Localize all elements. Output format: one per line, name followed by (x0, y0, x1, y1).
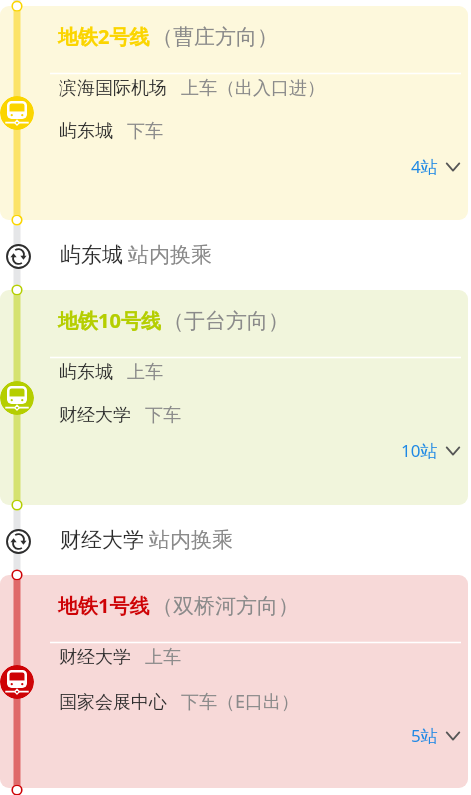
staticText: 地铁2号线 (58, 23, 150, 50)
button[interactable]: 屿东城 (0, 220, 471, 290)
staticText: （于台方向） (163, 308, 289, 334)
staticText: 下车 (145, 404, 181, 427)
staticText: 4站 (411, 155, 438, 178)
button[interactable]: 财经大学 (0, 505, 471, 575)
button[interactable]: 5站 (411, 724, 460, 747)
staticText: 屿东城 (59, 120, 113, 143)
button[interactable] (0, 290, 468, 505)
staticText: 站内换乘 (149, 527, 233, 553)
button[interactable]: 4站 (411, 155, 460, 178)
staticText: 下车（E口出） (181, 689, 300, 714)
staticText: 财经大学 (59, 646, 131, 669)
staticText: （曹庄方向） (152, 24, 278, 50)
staticText: 地铁10号线 (58, 307, 161, 334)
staticText: 上车 (145, 646, 181, 669)
staticText: 屿东城 (60, 242, 123, 268)
button[interactable] (0, 575, 468, 788)
staticText: 国家会展中心 (59, 691, 167, 714)
staticText: 地铁1号线 (58, 592, 150, 619)
button[interactable]: Metro line (0, 665, 34, 699)
staticText: （双桥河方向） (152, 593, 299, 619)
button[interactable]: Metro line (0, 96, 34, 130)
staticText: 屿东城 (59, 361, 113, 384)
staticText: 上车 (127, 361, 163, 384)
staticText: 滨海国际机场 (59, 77, 167, 100)
staticText: 下车 (127, 120, 163, 143)
staticText: 财经大学 (59, 404, 131, 427)
button[interactable] (0, 6, 468, 220)
staticText: 上车（出入口进） (181, 77, 325, 100)
staticText: 5站 (411, 724, 438, 747)
button[interactable]: 10站 (401, 439, 460, 462)
button[interactable]: Metro line (0, 381, 34, 415)
staticText: 站内换乘 (128, 242, 212, 268)
staticText: 财经大学 (60, 527, 144, 553)
staticText: 10站 (401, 439, 438, 462)
